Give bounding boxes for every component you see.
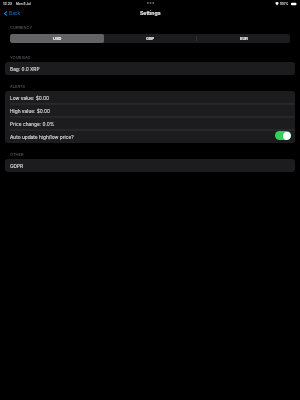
staticText: Settings <box>140 10 161 16</box>
button[interactable]: Auto update high/low price? <box>5 130 295 143</box>
staticText: 100% <box>280 2 289 6</box>
staticText: USD <box>53 36 62 41</box>
staticText: GBP <box>146 36 155 41</box>
button[interactable]: USD <box>10 34 104 43</box>
staticText: 12:23 <box>3 2 13 6</box>
staticText: YOUR BAG <box>10 55 31 60</box>
button[interactable]: Price change: 0.0% <box>5 117 295 130</box>
staticText: High value: $0.00 <box>10 108 51 114</box>
staticText: Auto update high/low price? <box>10 134 74 140</box>
other: Back <box>4 11 7 16</box>
staticText: Back <box>9 10 21 16</box>
button[interactable]: Auto update high low price toggle <box>275 131 291 140</box>
button[interactable]: Bag: 0.0 XRP <box>5 62 295 75</box>
staticText: GDPR <box>10 163 24 169</box>
button[interactable]: GDPR <box>5 159 295 172</box>
staticText: Mon 8 Jul <box>16 2 31 6</box>
staticText: Bag: 0.0 XRP <box>10 66 40 72</box>
staticText: CURRENCY <box>10 25 33 30</box>
staticText: EUR <box>240 36 248 41</box>
button[interactable]: EUR <box>197 34 290 43</box>
staticText: ALERTS <box>10 84 26 89</box>
button[interactable]: GBP <box>104 34 197 43</box>
staticText: Price change: 0.0% <box>10 121 55 127</box>
button[interactable]: High value: $0.00 <box>5 104 295 117</box>
staticText: OTHER <box>10 152 24 157</box>
staticText: Low value: $0.00 <box>10 95 49 101</box>
button[interactable]: Back <box>4 10 21 16</box>
button[interactable]: Low value: $0.00 <box>5 91 295 104</box>
